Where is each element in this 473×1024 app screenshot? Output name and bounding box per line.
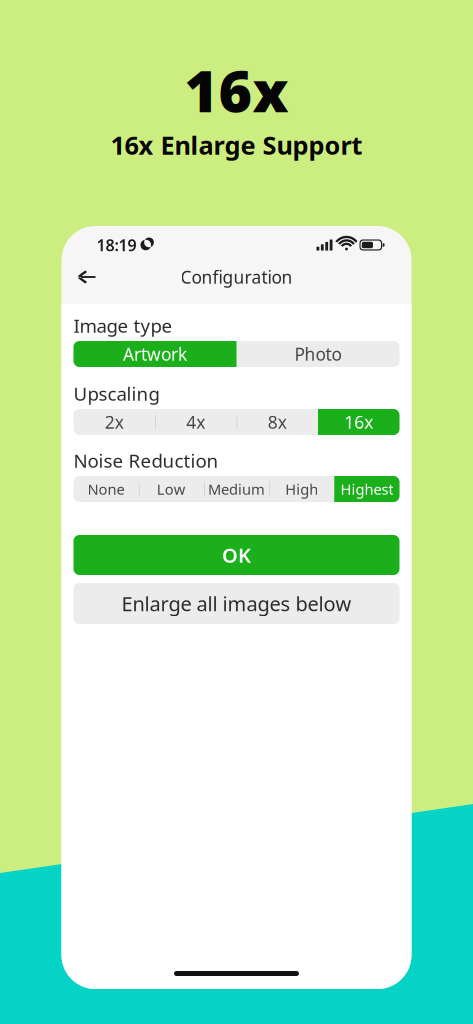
button[interactable]: 2x [73, 409, 155, 435]
staticText: Noise Reduction [73, 448, 218, 473]
staticText: High [285, 479, 318, 499]
button[interactable]: Highest [334, 476, 399, 502]
button[interactable]: High [269, 476, 334, 502]
button[interactable]: 4x [155, 409, 236, 435]
staticText: 16x [184, 52, 288, 128]
staticText: Highest [340, 479, 393, 499]
button[interactable]: 8x [236, 409, 318, 435]
button[interactable]: Back [71, 262, 102, 292]
staticText: 16x [344, 410, 373, 433]
staticText: 2x [105, 410, 124, 433]
staticText: Configuration [180, 265, 292, 288]
staticText: Photo [294, 342, 341, 365]
staticText: Artwork [123, 342, 187, 365]
staticText: Medium [208, 479, 265, 499]
button[interactable]: None [73, 476, 139, 502]
staticText: 4x [186, 410, 205, 433]
staticText: Image type [73, 313, 172, 338]
button[interactable]: Medium [204, 476, 269, 502]
button[interactable]: 16x [318, 409, 399, 435]
button[interactable]: Low [139, 476, 204, 502]
staticText: OK [222, 542, 251, 568]
button[interactable]: Artwork [73, 341, 236, 367]
staticText: Enlarge all images below [121, 590, 351, 617]
staticText: 18:19 [96, 234, 136, 256]
button[interactable]: Photo [236, 341, 399, 367]
staticText: Upscaling [73, 381, 159, 406]
staticText: 16x Enlarge Support [110, 128, 362, 162]
staticText: Low [157, 479, 186, 499]
staticText: None [88, 479, 125, 499]
staticText: 8x [268, 410, 287, 433]
button[interactable]: OK [73, 535, 399, 575]
button[interactable]: Enlarge all images below [73, 583, 399, 624]
